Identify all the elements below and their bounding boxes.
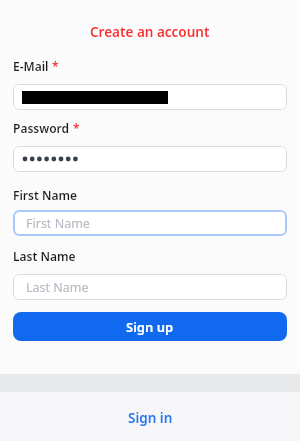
button[interactable]: Last Name [13, 274, 287, 300]
staticText: First Name [13, 187, 78, 203]
button[interactable] [13, 84, 287, 110]
button[interactable] [13, 146, 287, 172]
staticText: Sign in [128, 409, 173, 427]
staticText: Last Name [13, 248, 76, 264]
staticText: Password [13, 120, 70, 136]
button[interactable]: Sign in [128, 409, 173, 427]
staticText: * [49, 58, 59, 74]
staticText: First Name [26, 215, 90, 232]
button[interactable]: Sign up [13, 312, 287, 341]
staticText: Sign up [126, 318, 174, 336]
staticText: E-Mail [13, 58, 49, 74]
staticText: Create an account [90, 23, 210, 41]
button[interactable]: First Name [13, 210, 287, 236]
staticText: * [70, 120, 80, 136]
staticText: Last Name [26, 279, 89, 296]
